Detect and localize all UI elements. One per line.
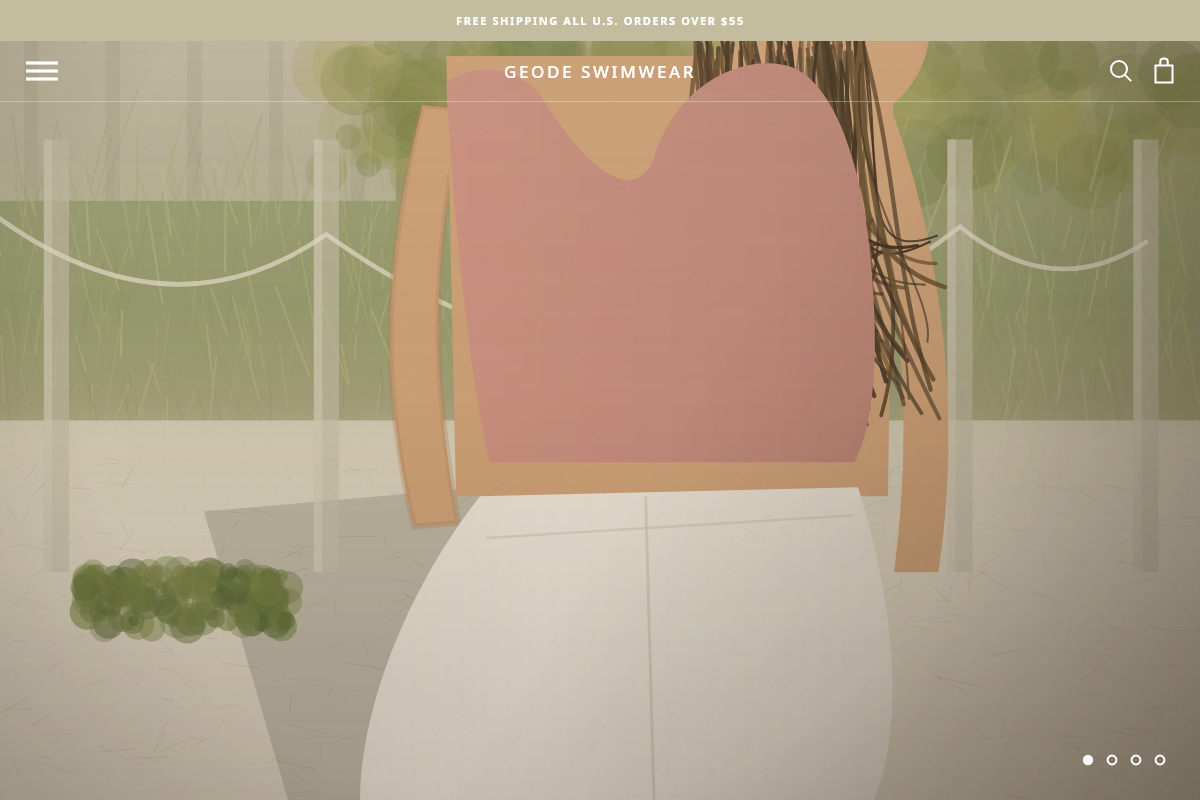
button[interactable]: GEODE SWIMWEAR — [504, 60, 697, 83]
button[interactable]: Slide 3 — [1124, 748, 1148, 772]
button[interactable]: FREE SHIPPING ALL U.S. ORDERS OVER $55 — [0, 0, 1200, 41]
button[interactable]: Shopping bag — [1142, 49, 1186, 93]
button[interactable]: Open menu — [18, 47, 66, 95]
button[interactable]: Search — [1098, 49, 1142, 93]
button[interactable]: Slide 1 — [1076, 748, 1100, 772]
staticText: FREE SHIPPING ALL U.S. ORDERS OVER $55 — [456, 13, 745, 28]
button[interactable]: Slide 4 — [1148, 748, 1172, 772]
button[interactable]: Slide 2 — [1100, 748, 1124, 772]
